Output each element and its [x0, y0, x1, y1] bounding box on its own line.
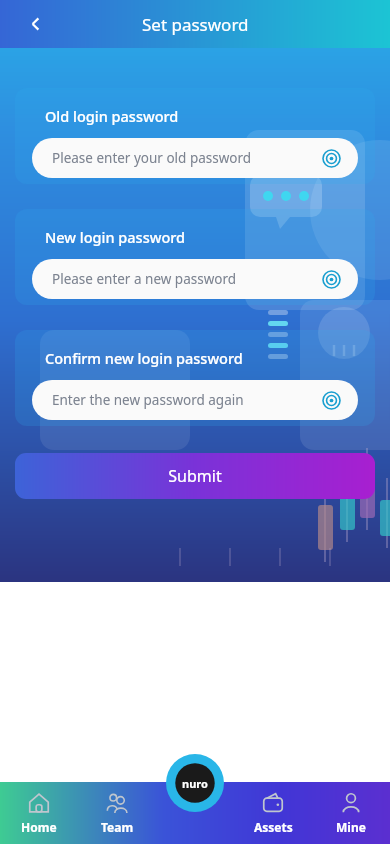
staticText: Enter the new password again	[52, 391, 318, 409]
button[interactable]: Show password	[318, 266, 344, 292]
button[interactable]: Please enter a new password	[32, 259, 358, 299]
staticText: Confirm new login password	[45, 348, 243, 368]
button[interactable]: Show password	[318, 145, 344, 171]
staticText: Home	[21, 819, 57, 835]
staticText: Mine	[336, 819, 366, 835]
button[interactable]: Please enter your old password	[32, 138, 358, 178]
button[interactable]: Submit	[15, 453, 375, 499]
button[interactable]: Home	[0, 782, 78, 844]
button[interactable]: Assets	[234, 782, 312, 844]
staticText: Set password	[142, 13, 249, 36]
button[interactable]: nuro home	[166, 754, 224, 812]
button[interactable]: Team	[78, 782, 156, 844]
staticText: nuro	[182, 776, 208, 791]
staticText: Team	[101, 819, 134, 835]
staticText: Assets	[254, 819, 293, 835]
button[interactable]: Show password	[318, 387, 344, 413]
staticText: Please enter a new password	[52, 270, 318, 288]
button[interactable]: Enter the new password again	[32, 380, 358, 420]
staticText: Old login password	[45, 106, 179, 126]
staticText: Please enter your old password	[52, 149, 318, 167]
staticText: Submit	[168, 465, 222, 487]
button[interactable]: Mine	[312, 782, 390, 844]
button[interactable]: Back	[14, 2, 58, 46]
staticText: New login password	[45, 227, 186, 247]
